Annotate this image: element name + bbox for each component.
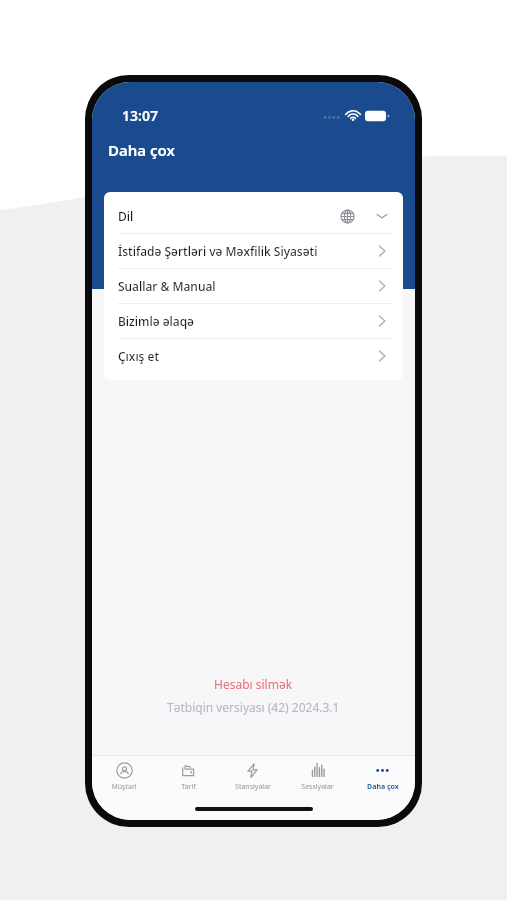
- staticText: Stansiyalar: [235, 782, 271, 792]
- button[interactable]: İstifadə Şərtləri və Məxfilik Siyasəti: [104, 234, 403, 268]
- button[interactable]: Tarif: [156, 756, 220, 798]
- staticText: Dil: [118, 208, 134, 224]
- button[interactable]: Hesabı silmək: [204, 674, 303, 694]
- staticText: 13:07: [122, 106, 158, 125]
- other: Language: [340, 209, 355, 224]
- staticText: İstifadə Şərtləri və Məxfilik Siyasəti: [118, 243, 318, 259]
- button[interactable]: Daha çox: [350, 756, 415, 798]
- button[interactable]: Bizimlə əlaqə: [104, 304, 403, 338]
- staticText: Bizimlə əlaqə: [118, 313, 194, 329]
- staticText: Daha çox: [108, 140, 175, 160]
- button[interactable]: Müştəri: [92, 756, 156, 798]
- staticText: Hesabı silmək: [214, 676, 293, 692]
- button[interactable]: Çıxış et: [104, 339, 403, 373]
- staticText: Daha çox: [367, 782, 399, 792]
- staticText: Sessiyalar: [301, 782, 334, 792]
- staticText: Müştəri: [111, 782, 137, 792]
- button[interactable]: Suallar & Manual: [104, 269, 403, 303]
- button[interactable]: Sessiyalar: [285, 756, 350, 798]
- staticText: Tarif: [181, 782, 196, 792]
- button[interactable]: Stansiyalar: [220, 756, 285, 798]
- staticText: Suallar & Manual: [118, 278, 216, 294]
- staticText: Tətbiqin versiyası (42) 2024.3.1: [167, 699, 340, 715]
- staticText: Çıxış et: [118, 348, 160, 364]
- button[interactable]: Dil: [104, 199, 403, 233]
